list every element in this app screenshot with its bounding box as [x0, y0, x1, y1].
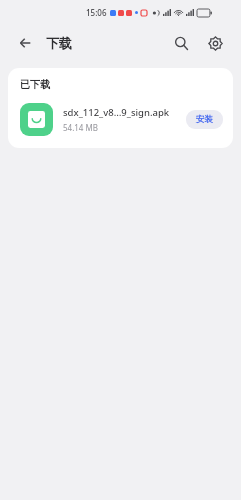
button[interactable]: sdx_112_v8…9_sign.apk: [20, 103, 223, 136]
staticText: 下载: [46, 35, 72, 51]
button[interactable]: Settings: [201, 29, 229, 57]
staticText: 已下载: [20, 78, 50, 91]
staticText: 15:06: [86, 7, 107, 18]
staticText: 54.14 MB: [63, 122, 98, 133]
button[interactable]: Search: [167, 29, 195, 57]
staticText: 安装: [196, 114, 213, 125]
staticText: sdx_112_v8…9_sign.apk: [63, 106, 170, 119]
button[interactable]: 安装: [186, 110, 223, 129]
button[interactable]: Back: [12, 30, 38, 56]
